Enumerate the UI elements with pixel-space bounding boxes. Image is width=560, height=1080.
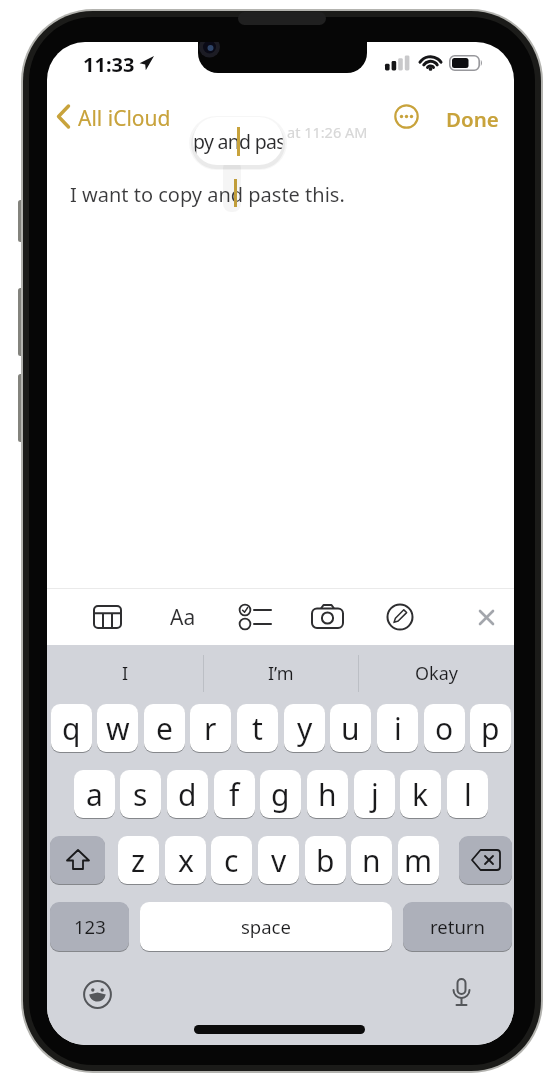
staticText: a — [86, 774, 103, 815]
staticText: 11:33 — [83, 51, 135, 78]
staticText: I want to copy and paste this. — [70, 181, 345, 208]
staticText: g — [271, 774, 290, 815]
button[interactable]: n — [351, 836, 392, 884]
staticText: i — [394, 708, 402, 749]
button[interactable]: e — [144, 704, 185, 752]
button[interactable] — [394, 104, 419, 129]
button[interactable] — [451, 978, 472, 1009]
staticText: Aa — [170, 603, 196, 631]
button[interactable]: q — [51, 704, 92, 752]
button[interactable]: I — [47, 645, 203, 702]
button[interactable]: m — [398, 836, 439, 884]
staticText: k — [412, 774, 429, 815]
button[interactable]: return — [403, 902, 512, 951]
button[interactable]: x — [165, 836, 206, 884]
button[interactable]: space — [140, 902, 392, 951]
staticText: s — [133, 774, 148, 815]
staticText: n — [362, 840, 381, 881]
button[interactable] — [83, 980, 112, 1009]
staticText: o — [435, 708, 454, 749]
button[interactable]: Okay — [358, 645, 514, 702]
button[interactable]: a — [74, 770, 115, 818]
button[interactable]: d — [167, 770, 208, 818]
button[interactable]: i — [377, 704, 418, 752]
button[interactable]: g — [260, 770, 301, 818]
button[interactable]: All iCloud — [78, 104, 171, 133]
button[interactable]: t — [237, 704, 278, 752]
button[interactable]: b — [305, 836, 346, 884]
button[interactable]: Done — [446, 105, 499, 133]
button[interactable]: w — [97, 704, 138, 752]
button[interactable] — [459, 836, 512, 884]
button[interactable]: v — [258, 836, 299, 884]
staticText: v — [271, 840, 287, 881]
button[interactable] — [238, 603, 273, 631]
staticText: l — [464, 774, 472, 815]
staticText: b — [316, 840, 335, 881]
button[interactable]: y — [284, 704, 325, 752]
button[interactable]: l — [447, 770, 488, 818]
staticText: d — [178, 774, 197, 815]
button[interactable]: r — [190, 704, 231, 752]
button[interactable]: s — [120, 770, 161, 818]
staticText: x — [178, 840, 194, 881]
button[interactable]: z — [118, 836, 159, 884]
staticText: e — [156, 708, 173, 749]
staticText: Okay — [415, 661, 458, 686]
button[interactable]: u — [330, 704, 371, 752]
staticText: t — [252, 708, 263, 749]
staticText: q — [62, 708, 81, 749]
button[interactable] — [55, 104, 73, 129]
staticText: z — [131, 840, 146, 881]
button[interactable] — [478, 609, 495, 626]
staticText: return — [430, 914, 485, 939]
staticText: 123 — [74, 914, 106, 939]
staticText: I’m — [268, 661, 294, 686]
staticText: I — [122, 661, 129, 686]
button[interactable] — [311, 604, 344, 629]
button[interactable]: I’m — [203, 645, 359, 702]
button[interactable]: f — [214, 770, 255, 818]
button[interactable]: p — [470, 704, 511, 752]
button[interactable]: k — [400, 770, 441, 818]
button[interactable] — [50, 836, 105, 884]
button[interactable] — [93, 605, 122, 629]
button[interactable]: c — [211, 836, 252, 884]
button[interactable] — [386, 603, 414, 631]
staticText: r — [204, 708, 217, 749]
staticText: c — [224, 840, 239, 881]
staticText: y — [297, 708, 313, 749]
staticText: h — [318, 774, 337, 815]
staticText: py and pas — [193, 128, 283, 155]
staticText: space — [241, 914, 291, 939]
staticText: m — [404, 840, 433, 881]
staticText: u — [341, 708, 360, 749]
staticText: f — [229, 774, 240, 815]
button[interactable]: 123 — [50, 902, 129, 951]
staticText: at 11:26 AM — [287, 122, 368, 142]
staticText: p — [481, 708, 500, 749]
staticText: w — [106, 708, 130, 749]
button[interactable]: Aa — [166, 603, 199, 631]
staticText: j — [371, 774, 379, 815]
button[interactable]: h — [307, 770, 348, 818]
button[interactable]: j — [354, 770, 395, 818]
button[interactable]: o — [424, 704, 465, 752]
